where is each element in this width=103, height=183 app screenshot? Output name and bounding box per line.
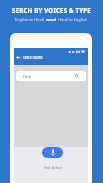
staticText: Serch By Voice bbox=[44, 166, 63, 170]
staticText: word bbox=[46, 17, 57, 22]
staticText: Find bbox=[23, 74, 32, 79]
staticText: Hindi to English bbox=[57, 17, 88, 22]
staticText: SERCH BY VOICES & TYPE bbox=[12, 6, 91, 14]
button[interactable]: Find bbox=[16, 71, 86, 81]
staticText: SERCH WORD bbox=[23, 56, 43, 60]
button[interactable]: Back bbox=[16, 55, 21, 60]
staticText: English to Hindi bbox=[15, 17, 46, 22]
button[interactable]: Search by voice bbox=[42, 147, 63, 158]
other: Search bbox=[75, 74, 79, 78]
